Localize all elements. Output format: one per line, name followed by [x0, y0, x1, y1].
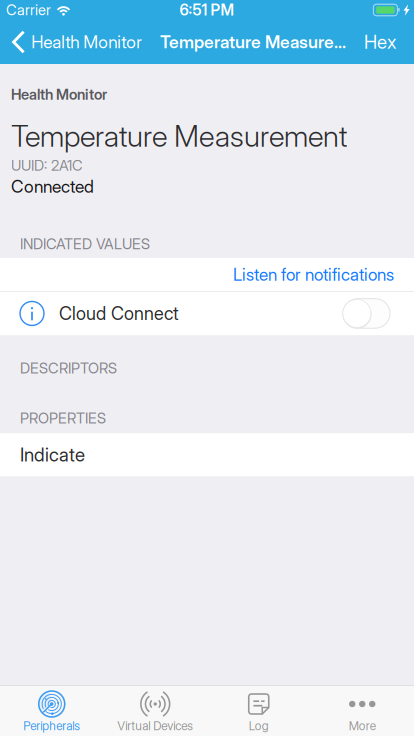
staticText: Indicate [20, 443, 85, 466]
staticText: Cloud Connect [59, 303, 179, 324]
staticText: 6:51 PM [179, 1, 234, 19]
staticText: DESCRIPTORS [20, 359, 117, 377]
staticText: Health Monitor [31, 31, 142, 52]
staticText: Temperature Measurement [11, 118, 347, 154]
staticText: INDICATED VALUES [20, 235, 150, 253]
staticText: Temperature Measure... [160, 31, 346, 52]
staticText: More [349, 719, 376, 733]
staticText: Log [249, 719, 269, 733]
staticText: PROPERTIES [20, 409, 106, 427]
button[interactable]: Indicate [0, 433, 414, 476]
button[interactable]: Cloud Connect [0, 292, 414, 335]
staticText: Carrier [6, 1, 51, 19]
button[interactable]: Peripherals [0, 686, 103, 736]
button[interactable]: More [310, 686, 414, 736]
staticText: UUID: 2A1C [11, 157, 83, 174]
button[interactable]: Log [207, 686, 310, 736]
button[interactable]: Health Monitor [0, 20, 142, 64]
staticText: Health Monitor [11, 86, 107, 103]
staticText: Virtual Devices [117, 719, 193, 733]
button[interactable]: Listen for notifications [0, 258, 414, 291]
staticText: Peripherals [23, 719, 80, 733]
staticText: Listen for notifications [233, 264, 394, 285]
staticText: Connected [11, 176, 94, 197]
button[interactable]: Virtual Devices [103, 686, 207, 736]
staticText: Hex [364, 31, 396, 53]
button[interactable]: Hex [364, 20, 414, 64]
